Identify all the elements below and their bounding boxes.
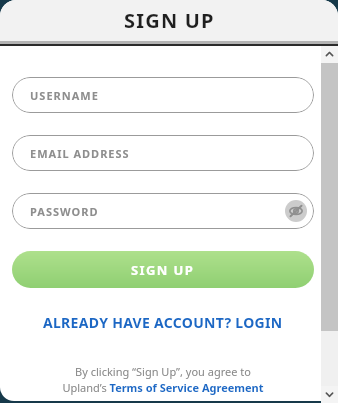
button[interactable]: Scroll down bbox=[321, 386, 338, 403]
button[interactable]: EMAIL ADDRESS bbox=[12, 135, 314, 171]
button[interactable]: Scroll up bbox=[321, 46, 338, 63]
staticText: By clicking “Sign Up”, you agree to Upla… bbox=[62, 364, 264, 395]
button[interactable]: ALREADY HAVE ACCOUNT? LOGIN bbox=[12, 313, 314, 332]
staticText: EMAIL ADDRESS bbox=[30, 146, 130, 161]
staticText: ALREADY HAVE ACCOUNT? LOGIN bbox=[43, 313, 283, 332]
staticText: SIGN UP bbox=[131, 261, 195, 279]
staticText: SIGN UP bbox=[124, 7, 215, 34]
staticText: PASSWORD bbox=[30, 204, 99, 219]
button[interactable]: Show password bbox=[285, 200, 307, 222]
button[interactable]: PASSWORD bbox=[12, 193, 314, 229]
button[interactable]: USERNAME bbox=[12, 77, 314, 113]
staticText: USERNAME bbox=[30, 88, 99, 103]
button[interactable]: SIGN UP bbox=[12, 251, 314, 288]
